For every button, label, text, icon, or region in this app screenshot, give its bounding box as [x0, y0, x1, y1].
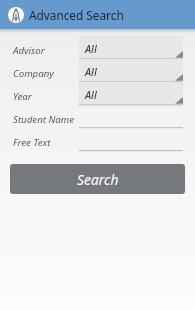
button[interactable]: All	[79, 36, 183, 59]
staticText: Free Text	[13, 136, 51, 149]
staticText: Year	[13, 90, 32, 103]
button[interactable]	[79, 105, 183, 128]
staticText: Advanced Search	[29, 7, 124, 23]
staticText: Company	[13, 67, 54, 80]
other: App logo	[8, 7, 24, 23]
button[interactable]: All	[79, 59, 183, 82]
staticText: Search	[77, 170, 119, 189]
staticText: All	[85, 42, 97, 56]
button[interactable]: All	[79, 82, 183, 105]
staticText: Advisor	[13, 44, 45, 57]
button[interactable]: Search	[10, 164, 185, 194]
staticText: Student Name	[13, 113, 75, 126]
button[interactable]	[79, 128, 183, 151]
staticText: All	[85, 88, 97, 102]
staticText: All	[85, 65, 97, 79]
